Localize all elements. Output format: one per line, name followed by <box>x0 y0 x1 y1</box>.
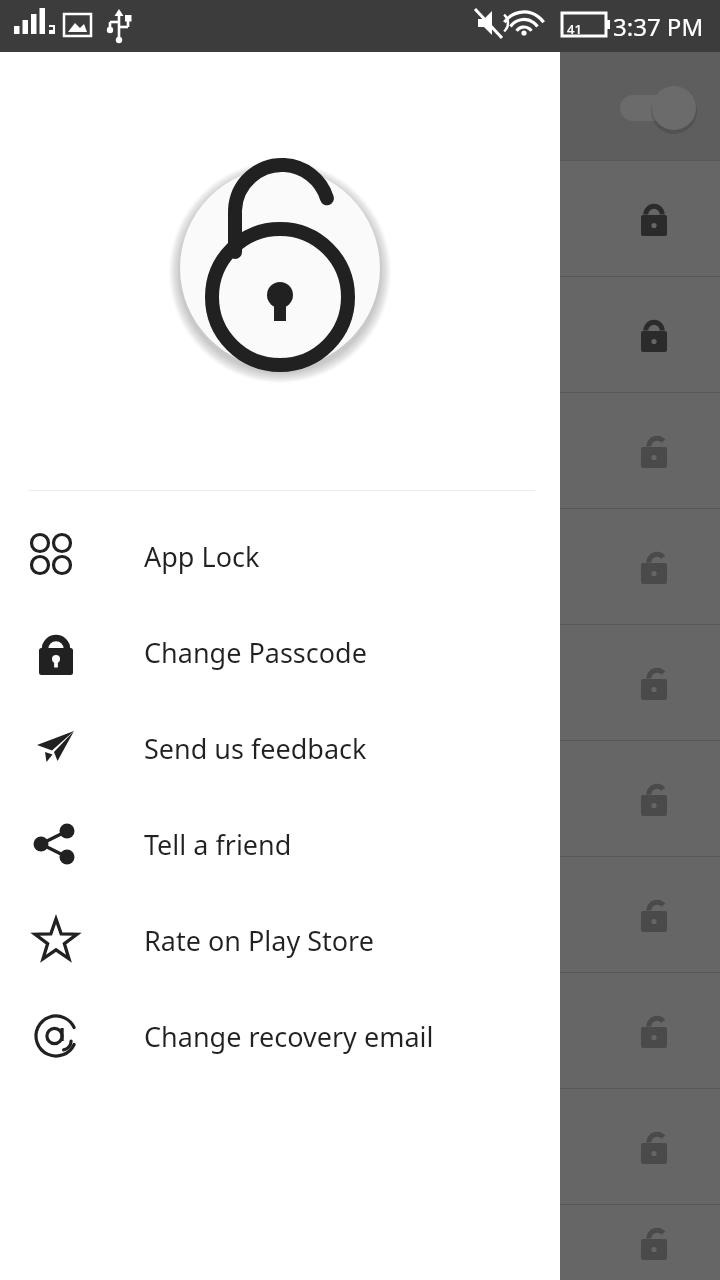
button[interactable]: App Lock <box>0 508 560 604</box>
button[interactable]: Unlocked <box>0 857 720 972</box>
button[interactable]: Unlocked <box>0 973 720 1088</box>
button[interactable]: Rate on Play Store <box>0 892 560 988</box>
staticText: App Lock <box>144 538 260 575</box>
staticText: Tell a friend <box>144 826 292 863</box>
button[interactable]: Tell a friend <box>0 796 560 892</box>
button[interactable]: Unlocked <box>0 741 720 856</box>
other: Locked <box>631 312 677 358</box>
other: Locked <box>631 196 677 242</box>
button[interactable]: Locked <box>0 161 720 276</box>
staticText: 41 <box>567 20 582 38</box>
button[interactable]: Unlocked <box>0 393 720 508</box>
other: Unlocked <box>631 544 677 590</box>
staticText: Change recovery email <box>144 1018 434 1055</box>
button[interactable]: Unlocked <box>0 1205 720 1280</box>
other: Unlocked <box>631 428 677 474</box>
button[interactable]: Change recovery email <box>0 988 560 1084</box>
button[interactable]: Unlocked <box>0 625 720 740</box>
staticText: Send us feedback <box>144 730 367 767</box>
button[interactable]: Change Passcode <box>0 604 560 700</box>
staticText: 3:37 PM <box>613 10 704 43</box>
button[interactable]: Locked <box>0 277 720 392</box>
staticText: Change Passcode <box>144 634 367 671</box>
button[interactable]: Send us feedback <box>0 700 560 796</box>
other: Unlocked <box>631 660 677 706</box>
button[interactable]: Unlocked <box>0 509 720 624</box>
other: Unlocked <box>631 1220 677 1266</box>
button[interactable]: Unlocked <box>0 1089 720 1204</box>
other: Unlocked <box>631 776 677 822</box>
other: Unlocked <box>631 1124 677 1170</box>
other: Unlocked <box>631 1008 677 1054</box>
other: Unlocked <box>631 892 677 938</box>
staticText: Rate on Play Store <box>144 922 374 959</box>
